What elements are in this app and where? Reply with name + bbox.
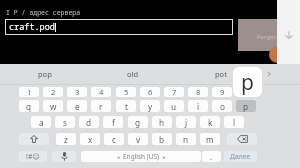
button[interactable]: Voice input bbox=[52, 151, 76, 162]
staticText: e bbox=[75, 101, 80, 112]
button[interactable]: q bbox=[19, 100, 39, 112]
staticText: ◂ bbox=[117, 154, 120, 160]
staticText: English (US) bbox=[123, 152, 160, 161]
staticText: t bbox=[125, 101, 128, 112]
staticText: d bbox=[86, 117, 92, 128]
staticText: craft.pod bbox=[9, 21, 55, 33]
button[interactable]: More suggestions bbox=[261, 64, 277, 84]
staticText: Forgot bbox=[257, 33, 276, 41]
button[interactable]: old bbox=[89, 64, 177, 84]
button[interactable]: pop bbox=[0, 64, 89, 84]
staticText: n bbox=[183, 134, 189, 145]
staticText: j bbox=[185, 117, 188, 128]
staticText: w bbox=[50, 101, 57, 112]
staticText: p bbox=[241, 68, 254, 97]
button[interactable]: g bbox=[128, 116, 148, 128]
staticText: q bbox=[26, 101, 32, 112]
staticText: y bbox=[148, 101, 153, 112]
button[interactable]: 3 bbox=[67, 87, 87, 97]
button[interactable]: . bbox=[202, 151, 221, 162]
button[interactable]: 7 bbox=[164, 87, 184, 97]
button[interactable]: pot bbox=[177, 64, 265, 84]
button[interactable]: Select bbox=[277, 82, 300, 96]
staticText: r bbox=[99, 101, 103, 112]
staticText: o bbox=[220, 101, 225, 112]
staticText: 6 bbox=[148, 87, 153, 97]
button[interactable]: t bbox=[116, 100, 136, 112]
button[interactable]: 5 bbox=[116, 87, 136, 97]
staticText: x bbox=[88, 134, 93, 145]
button[interactable]: Shift bbox=[19, 133, 49, 145]
staticText: h bbox=[159, 117, 165, 128]
staticText: p bbox=[243, 101, 249, 112]
staticText: 5 bbox=[124, 87, 129, 97]
button[interactable]: u bbox=[164, 100, 184, 112]
button[interactable]: Download bbox=[277, 28, 300, 42]
staticText: g bbox=[135, 117, 141, 128]
staticText: l bbox=[233, 117, 236, 128]
staticText: z bbox=[64, 134, 68, 145]
staticText: v bbox=[136, 134, 141, 145]
button[interactable]: craft.pod bbox=[5, 19, 233, 35]
button[interactable]: m bbox=[200, 133, 220, 145]
staticText: k bbox=[208, 117, 213, 128]
button[interactable]: 9 bbox=[212, 87, 232, 97]
staticText: I P / адрес сервера bbox=[6, 8, 81, 17]
button[interactable]: s bbox=[55, 116, 75, 128]
staticText: f bbox=[112, 117, 115, 128]
staticText: m bbox=[206, 134, 214, 145]
staticText: Далее bbox=[230, 152, 251, 161]
staticText: i bbox=[197, 101, 200, 112]
button[interactable]: n bbox=[176, 133, 196, 145]
button[interactable]: j bbox=[176, 116, 196, 128]
button[interactable]: k bbox=[200, 116, 220, 128]
staticText: 4 bbox=[99, 87, 104, 97]
staticText: 1 bbox=[27, 87, 32, 97]
staticText: 2 bbox=[51, 87, 56, 97]
staticText: a bbox=[39, 117, 44, 128]
button[interactable]: a bbox=[31, 116, 51, 128]
staticText: s bbox=[63, 117, 67, 128]
button[interactable]: l bbox=[224, 116, 244, 128]
button[interactable]: 2 bbox=[43, 87, 63, 97]
button[interactable]: i bbox=[188, 100, 208, 112]
button[interactable]: 6 bbox=[140, 87, 160, 97]
button[interactable]: b bbox=[152, 133, 172, 145]
staticText: 0 bbox=[244, 87, 249, 97]
staticText: 9 bbox=[220, 87, 225, 97]
staticText: pop bbox=[38, 69, 52, 79]
staticText: 7 bbox=[172, 87, 177, 97]
button[interactable]: p bbox=[236, 100, 256, 112]
staticText: . bbox=[210, 151, 213, 162]
button[interactable]: e bbox=[67, 100, 87, 112]
button[interactable]: y bbox=[140, 100, 160, 112]
staticText: 3 bbox=[75, 87, 80, 97]
button[interactable]: 8 bbox=[188, 87, 208, 97]
button[interactable]: v bbox=[128, 133, 148, 145]
button[interactable]: z bbox=[56, 133, 76, 145]
button[interactable]: ◂ bbox=[81, 151, 201, 162]
button[interactable]: 4 bbox=[91, 87, 111, 97]
button[interactable]: Forgot bbox=[238, 19, 277, 51]
button[interactable]: r bbox=[91, 100, 111, 112]
button[interactable]: h bbox=[152, 116, 172, 128]
staticText: pot bbox=[215, 69, 227, 79]
staticText: old bbox=[127, 69, 139, 79]
button[interactable]: x bbox=[80, 133, 100, 145]
button[interactable]: d bbox=[79, 116, 99, 128]
button[interactable]: 0 bbox=[236, 87, 256, 97]
button[interactable]: Backspace bbox=[227, 133, 257, 145]
button[interactable]: !#☺ bbox=[19, 151, 47, 162]
button[interactable]: Далее bbox=[224, 151, 257, 162]
button[interactable]: f bbox=[103, 116, 123, 128]
button[interactable]: 1 bbox=[19, 87, 39, 97]
button[interactable]: c bbox=[104, 133, 124, 145]
button[interactable]: w bbox=[43, 100, 63, 112]
staticText: u bbox=[171, 101, 177, 112]
button[interactable]: o bbox=[212, 100, 232, 112]
staticText: ▸ bbox=[163, 154, 166, 160]
staticText: b bbox=[159, 134, 165, 145]
staticText: 8 bbox=[196, 87, 201, 97]
staticText: c bbox=[112, 134, 116, 145]
